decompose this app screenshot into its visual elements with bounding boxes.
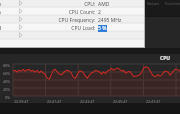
staticText: 40% [3, 79, 11, 84]
staticText: 80% [3, 63, 11, 68]
button[interactable]: Main [0, 8, 14, 16]
staticText: 22:47:47 [146, 99, 161, 104]
button[interactable]: Group [0, 0, 14, 8]
staticText: : [94, 1, 96, 8]
staticText: AMD [98, 1, 110, 8]
staticText: 2 [98, 9, 101, 16]
staticText: 60% [3, 71, 11, 76]
staticText: : [94, 9, 96, 16]
staticText: CPU [160, 55, 171, 62]
staticText: Main [0, 9, 1, 16]
staticText: 2495 MHz [98, 17, 122, 24]
staticText: : [94, 25, 96, 32]
staticText: CPU [0, 1, 94, 8]
staticText: 22:45:47 [113, 99, 128, 104]
button[interactable]: CPU Load [0, 24, 145, 32]
staticText: Windows [0, 25, 3, 32]
staticText: Function [165, 1, 180, 6]
button[interactable]: CPU [0, 0, 145, 8]
staticText: CPU Count [0, 9, 94, 16]
button[interactable]: Windows [0, 24, 14, 32]
staticText: 22:41:47 [47, 99, 62, 104]
staticText: : [94, 17, 96, 24]
staticText: 20% [3, 87, 11, 92]
staticText: CPU Frequency [0, 17, 94, 24]
button[interactable]: CPU Frequency [0, 16, 145, 24]
button[interactable]: CPU Count [0, 8, 145, 16]
staticText: Values [147, 1, 160, 6]
staticText: 22:39:47 [14, 99, 29, 104]
staticText: CPU Load [0, 25, 94, 32]
staticText: Group [0, 1, 3, 8]
staticText: 0% [5, 95, 11, 100]
staticText: 5 % [98, 25, 107, 32]
staticText: 22:43:47 [80, 99, 95, 104]
